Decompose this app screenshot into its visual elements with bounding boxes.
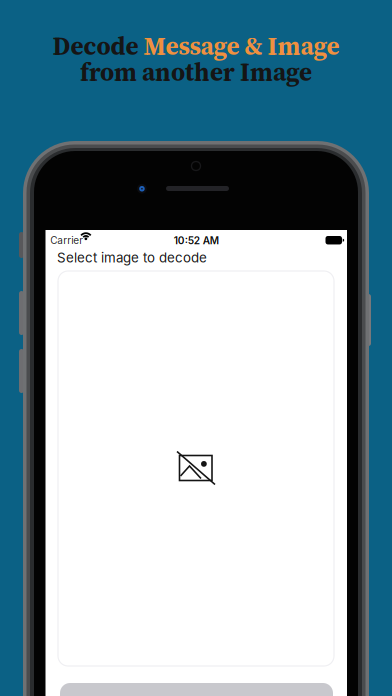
button[interactable] [60, 683, 333, 696]
staticText: 10:52 AM [174, 234, 219, 247]
staticText: from another Image [80, 55, 312, 89]
staticText: Select image to decode [57, 249, 207, 266]
staticText: Decode [52, 29, 143, 63]
staticText: Carrier [50, 234, 83, 246]
staticText: Message & Image [143, 29, 339, 63]
